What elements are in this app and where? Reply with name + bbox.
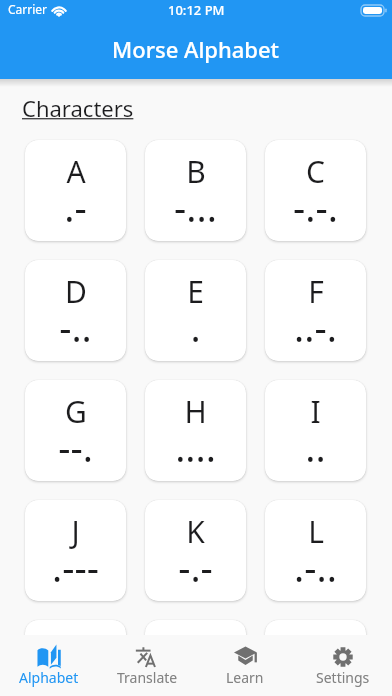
button[interactable]: M bbox=[25, 620, 126, 696]
button[interactable]: F bbox=[265, 260, 366, 361]
staticText: J bbox=[71, 511, 80, 552]
staticText: 10:12 PM bbox=[168, 1, 225, 19]
staticText: A bbox=[66, 151, 86, 192]
staticText: Alphabet bbox=[19, 668, 79, 687]
staticText: Characters bbox=[22, 93, 134, 123]
staticText: Translate bbox=[117, 668, 178, 687]
staticText: C bbox=[306, 151, 325, 192]
staticText: -.. bbox=[59, 301, 92, 353]
staticText: -.-. bbox=[293, 181, 338, 233]
staticText: .-.. bbox=[294, 541, 337, 593]
staticText: ..-. bbox=[294, 301, 337, 353]
staticText: H bbox=[184, 391, 207, 432]
button[interactable]: C bbox=[265, 140, 366, 241]
button[interactable]: Learn bbox=[196, 635, 294, 696]
staticText: Carrier bbox=[8, 1, 48, 17]
button[interactable]: I bbox=[265, 380, 366, 481]
staticText: .- bbox=[64, 181, 87, 233]
staticText: -... bbox=[174, 181, 217, 233]
button[interactable]: D bbox=[25, 260, 126, 361]
staticText: --. bbox=[58, 421, 93, 473]
staticText: -.- bbox=[178, 541, 213, 593]
button[interactable]: E bbox=[145, 260, 246, 361]
staticText: B bbox=[186, 151, 206, 192]
staticText: Morse Alphabet bbox=[112, 34, 280, 64]
staticText: I bbox=[310, 391, 321, 432]
staticText: .... bbox=[175, 421, 216, 473]
button[interactable]: H bbox=[145, 380, 246, 481]
staticText: F bbox=[308, 271, 324, 312]
staticText: Settings bbox=[316, 668, 370, 687]
button[interactable]: Translate bbox=[98, 635, 196, 696]
button[interactable]: Alphabet bbox=[0, 635, 98, 696]
button[interactable]: Settings bbox=[294, 635, 392, 696]
button[interactable]: L bbox=[265, 500, 366, 601]
staticText: .--- bbox=[52, 541, 99, 593]
staticText: -- bbox=[63, 661, 88, 696]
button[interactable]: N bbox=[145, 620, 246, 696]
button[interactable]: A bbox=[25, 140, 126, 241]
staticText: G bbox=[65, 391, 87, 432]
button[interactable]: B bbox=[145, 140, 246, 241]
button[interactable]: O bbox=[265, 620, 366, 696]
staticText: --- bbox=[297, 661, 334, 696]
button[interactable]: J bbox=[25, 500, 126, 601]
staticText: . bbox=[190, 301, 201, 353]
button[interactable]: K bbox=[145, 500, 246, 601]
staticText: .. bbox=[305, 421, 326, 473]
staticText: E bbox=[187, 271, 204, 312]
staticText: Learn bbox=[226, 668, 264, 687]
button[interactable]: G bbox=[25, 380, 126, 481]
staticText: L bbox=[308, 511, 324, 552]
staticText: D bbox=[65, 271, 87, 312]
staticText: K bbox=[186, 511, 205, 552]
